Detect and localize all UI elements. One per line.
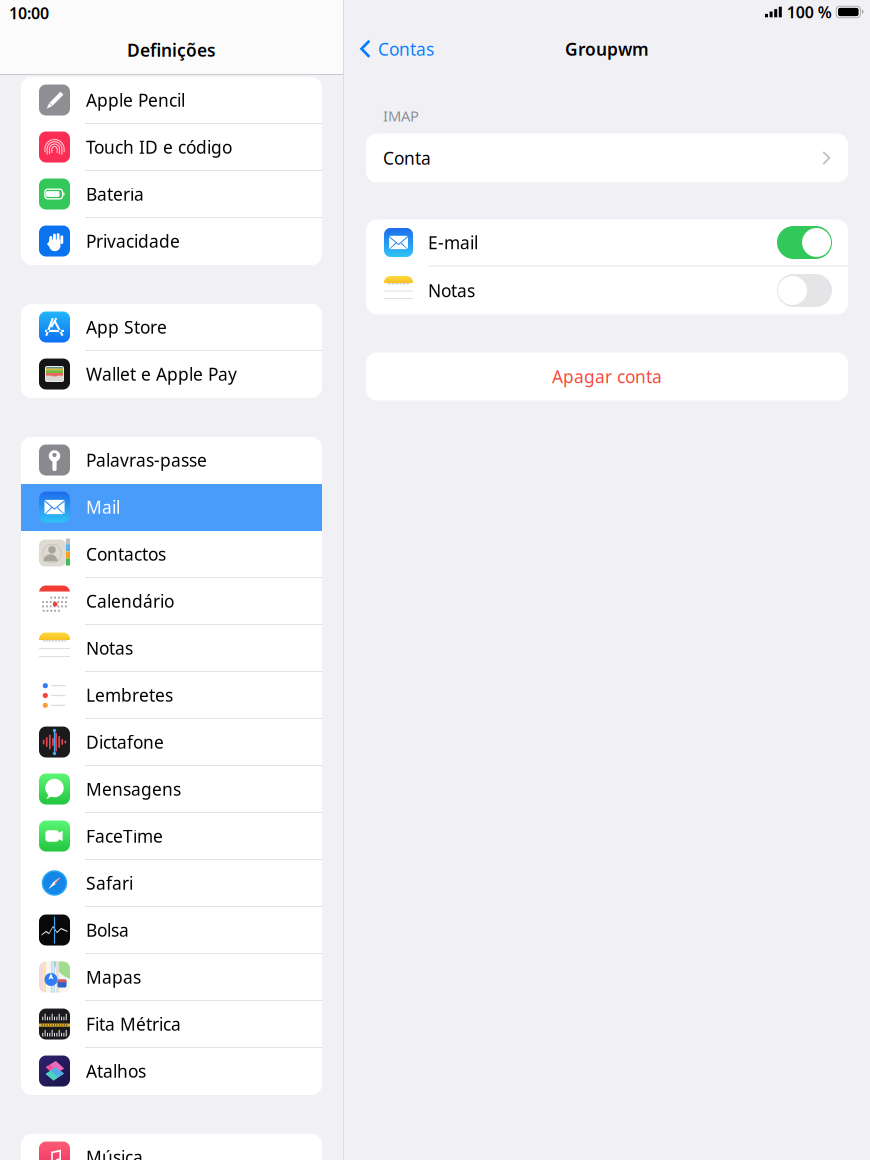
button[interactable]: Contas bbox=[344, 28, 434, 69]
button[interactable]: Safari bbox=[21, 860, 322, 907]
button[interactable]: Conta bbox=[366, 133, 848, 182]
staticText: Bateria bbox=[86, 182, 144, 205]
staticText: Apple Pencil bbox=[86, 88, 185, 111]
staticText: Groupwm bbox=[565, 37, 649, 60]
button[interactable]: Atalhos bbox=[21, 1048, 322, 1095]
button[interactable]: Apple Pencil bbox=[21, 77, 322, 124]
button[interactable]: Mensagens bbox=[21, 766, 322, 813]
button[interactable]: Fita Métrica bbox=[21, 1001, 322, 1048]
button[interactable]: Contactos bbox=[21, 531, 322, 578]
button[interactable]: E-mail bbox=[777, 226, 832, 259]
staticText: Touch ID e código bbox=[86, 135, 232, 158]
staticText: Contas bbox=[378, 37, 434, 60]
button[interactable]: App Store bbox=[21, 304, 322, 351]
staticText: Calendário bbox=[86, 589, 174, 612]
button[interactable]: Dictafone bbox=[21, 719, 322, 766]
staticText: Mapas bbox=[86, 965, 141, 988]
staticText: IMAP bbox=[383, 106, 419, 125]
button[interactable]: Bateria bbox=[21, 171, 322, 218]
staticText: Mail bbox=[86, 495, 120, 518]
staticText: Notas bbox=[86, 636, 133, 659]
button[interactable]: Lembretes bbox=[21, 672, 322, 719]
button[interactable]: Calendário bbox=[21, 578, 322, 625]
button[interactable]: Mail bbox=[21, 484, 322, 531]
button[interactable]: Bolsa bbox=[21, 907, 322, 954]
staticText: Definições bbox=[127, 38, 216, 61]
button[interactable]: Notas bbox=[21, 625, 322, 672]
staticText: Contactos bbox=[86, 542, 166, 565]
button[interactable]: Notas bbox=[777, 274, 832, 307]
button[interactable]: Mapas bbox=[21, 954, 322, 1001]
button[interactable]: FaceTime bbox=[21, 813, 322, 860]
button[interactable]: Música bbox=[21, 1134, 322, 1160]
staticText: Bolsa bbox=[86, 918, 129, 941]
staticText: E-mail bbox=[428, 231, 478, 254]
staticText: Apagar conta bbox=[552, 365, 662, 388]
button[interactable]: Wallet e Apple Pay bbox=[21, 351, 322, 398]
staticText: Lembretes bbox=[86, 683, 173, 706]
staticText: App Store bbox=[86, 315, 167, 338]
staticText: 10:00 bbox=[9, 2, 49, 24]
staticText: Notas bbox=[428, 279, 475, 302]
button[interactable]: Touch ID e código bbox=[21, 124, 322, 171]
staticText: Música bbox=[86, 1145, 143, 1160]
button[interactable]: Privacidade bbox=[21, 218, 322, 265]
staticText: Safari bbox=[86, 871, 133, 894]
staticText: Palavras-passe bbox=[86, 448, 207, 471]
button[interactable]: Apagar conta bbox=[366, 352, 848, 400]
staticText: Mensagens bbox=[86, 777, 181, 800]
staticText: Dictafone bbox=[86, 730, 164, 753]
staticText: 100 % bbox=[787, 1, 832, 23]
button[interactable]: Palavras-passe bbox=[21, 437, 322, 484]
staticText: Atalhos bbox=[86, 1059, 146, 1082]
staticText: Wallet e Apple Pay bbox=[86, 362, 237, 385]
staticText: Fita Métrica bbox=[86, 1012, 181, 1035]
staticText: Privacidade bbox=[86, 229, 180, 252]
staticText: Conta bbox=[383, 146, 431, 169]
staticText: FaceTime bbox=[86, 824, 163, 847]
